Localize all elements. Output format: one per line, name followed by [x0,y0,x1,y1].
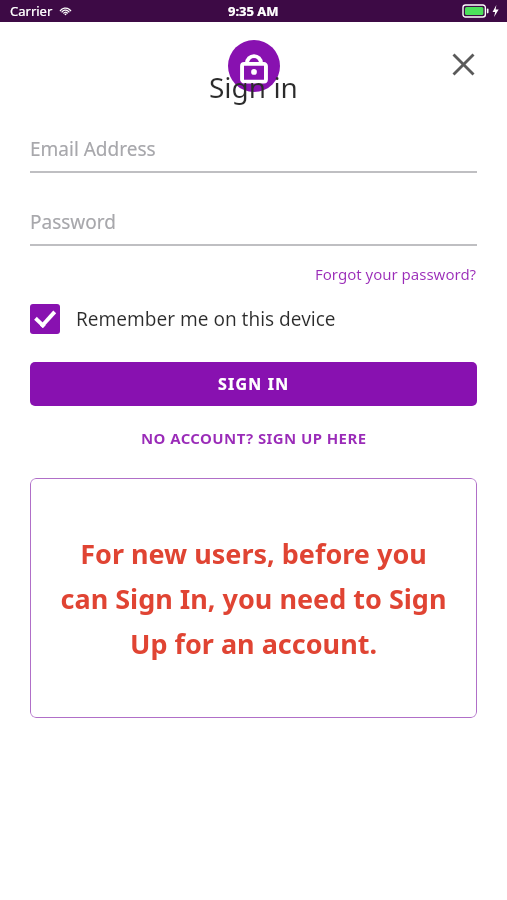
staticText: Password [30,209,116,235]
staticText: Remember me on this device [76,306,336,332]
button[interactable]: Email Address [30,136,477,173]
button[interactable]: Forgot your password? [315,262,477,286]
staticText: SIGN IN [218,373,290,395]
staticText: Sign in [209,68,298,106]
button[interactable]: SIGN IN [30,362,477,406]
button[interactable]: Remember me on this device [30,304,477,334]
staticText: Email Address [30,136,156,162]
staticText: Carrier [10,2,53,20]
staticText: Forgot your password? [315,264,477,284]
staticText: 9:35 AM [228,2,279,20]
staticText: NO ACCOUNT? SIGN UP HERE [141,428,367,448]
button[interactable]: NO ACCOUNT? SIGN UP HERE [30,428,477,448]
staticText: For new users, before you can Sign In, y… [56,535,451,662]
button[interactable]: Close [441,42,485,86]
button[interactable]: Secure sign in [228,40,280,92]
button[interactable]: Password [30,209,477,246]
